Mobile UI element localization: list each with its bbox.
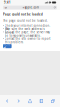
staticText: Check your internet connection. [4,24,50,27]
button[interactable]: Bookmarks [36,99,47,103]
staticText: Make sure the web address is correct. [4,27,44,34]
staticText: Reload the page; the server may be tempo… [4,30,49,38]
staticText: Page could not be loaded [3,13,43,16]
button[interactable]: Back [1,99,13,103]
button[interactable]: Reload [3,44,12,48]
staticText: Reload [3,43,11,50]
staticText: The page could not be loaded. [3,19,48,22]
button[interactable]: Share [24,99,36,103]
button[interactable]: Tabs [47,99,58,103]
button[interactable]: Forward [13,99,24,103]
staticText: apple.com [24,6,38,9]
staticText: aA [4,6,7,9]
button[interactable]: aA [3,6,57,9]
staticText: 9:41 [4,1,11,4]
staticText: Contact the site owner to report this pr… [4,37,50,44]
